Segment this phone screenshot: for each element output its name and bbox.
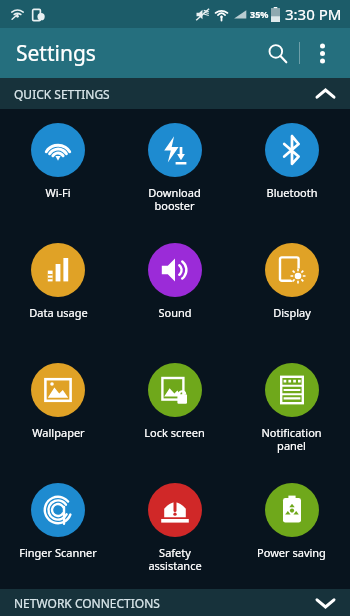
staticText: Lock screen (144, 425, 205, 440)
button[interactable]: QUICK SETTINGS (0, 78, 350, 109)
button[interactable]: NETWORK CONNECTIONS (0, 589, 350, 616)
button[interactable]: Notification panel (233, 349, 350, 469)
staticText: Notification panel (261, 425, 322, 453)
button[interactable]: More options (300, 31, 344, 75)
staticText: 35% (250, 8, 269, 20)
staticText: Power saving (257, 545, 326, 560)
staticText: Bluetooth (266, 185, 318, 200)
button[interactable]: Bluetooth (233, 109, 350, 229)
button[interactable]: Safety assistance (116, 469, 233, 589)
button[interactable]: Wi-Fi (0, 109, 116, 229)
staticText: Settings (16, 39, 96, 68)
button[interactable]: Display (233, 229, 350, 349)
staticText: Finger Scanner (19, 545, 97, 560)
staticText: Sound (158, 305, 192, 320)
button[interactable]: Wallpaper (0, 349, 116, 469)
staticText: Safety assistance (148, 545, 202, 573)
staticText: Data usage (29, 305, 88, 320)
staticText: QUICK SETTINGS (14, 86, 110, 102)
button[interactable]: Download booster (116, 109, 233, 229)
staticText: Wallpaper (32, 425, 85, 440)
staticText: Wi-Fi (45, 185, 71, 200)
staticText: Download booster (148, 185, 201, 213)
button[interactable]: Search (255, 31, 299, 75)
staticText: 3:30 PM (285, 4, 342, 24)
staticText: Display (273, 305, 311, 320)
button[interactable]: Lock screen (116, 349, 233, 469)
staticText: NETWORK CONNECTIONS (14, 595, 160, 611)
button[interactable]: Data usage (0, 229, 116, 349)
button[interactable]: Finger Scanner (0, 469, 116, 589)
button[interactable]: Power saving (233, 469, 350, 589)
button[interactable]: Sound (116, 229, 233, 349)
